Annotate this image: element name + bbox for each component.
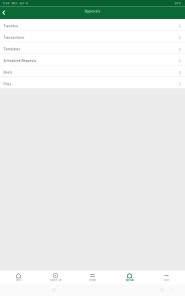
staticText: Services	[89, 279, 96, 281]
button[interactable]: Services	[74, 270, 111, 284]
staticText: More	[164, 279, 169, 281]
staticText: Templates	[4, 48, 21, 51]
staticText: Users	[4, 71, 13, 74]
button[interactable]: Templates	[0, 42, 185, 54]
button[interactable]: Back	[0, 6, 8, 19]
button[interactable]: Home	[0, 270, 37, 284]
button[interactable]: More	[148, 270, 185, 284]
button[interactable]: Approvals	[111, 270, 148, 284]
staticText: Transfers	[4, 24, 19, 28]
button[interactable]: Transfer Pay	[37, 270, 74, 284]
button[interactable]: Transfers	[0, 19, 185, 31]
button[interactable]: Recents	[49, 284, 59, 296]
staticText: Transfer Pay	[49, 279, 61, 281]
staticText: Scheduled Requests	[4, 59, 37, 63]
button[interactable]: Files	[0, 77, 185, 89]
button[interactable]: Scheduled Requests	[0, 54, 185, 65]
staticText: Home	[16, 279, 21, 281]
staticText: Transactions	[4, 36, 25, 39]
staticText: Approvals	[125, 279, 133, 281]
button[interactable]: Users	[0, 65, 185, 77]
button[interactable]: Transactions	[0, 31, 185, 42]
staticText: 30%	[174, 2, 181, 5]
staticText: Files	[4, 82, 12, 86]
staticText: Mon, Jun 16	[9, 2, 28, 5]
staticText: 11:38	[2, 2, 9, 5]
staticText: Approvals	[84, 9, 100, 13]
button[interactable]: Home	[157, 284, 167, 296]
